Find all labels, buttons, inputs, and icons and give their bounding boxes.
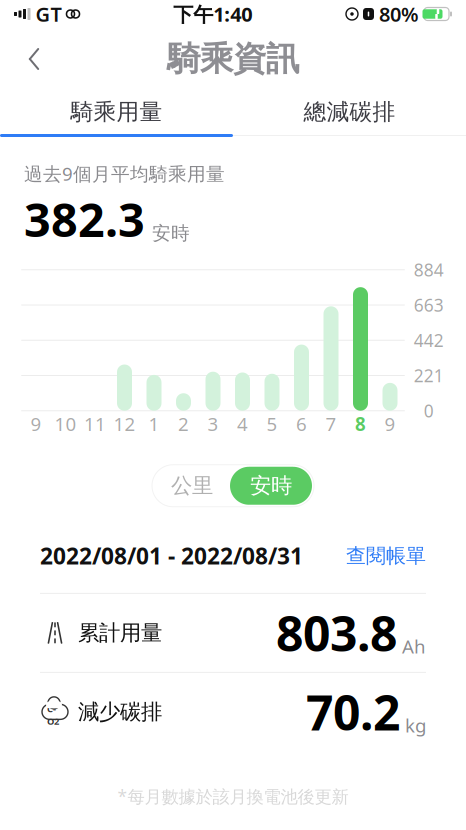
button[interactable]: 返回: [12, 37, 56, 81]
staticText: *每月數據於該月換電池後更新: [117, 785, 348, 808]
staticText: 80%: [379, 1, 419, 27]
staticText: 查閱帳單: [346, 543, 426, 568]
staticText: 累計用量: [78, 620, 162, 646]
staticText: 0: [424, 399, 434, 422]
staticText: 2: [178, 411, 189, 436]
staticText: 公里: [171, 473, 213, 499]
staticText: 8: [355, 411, 366, 436]
staticText: 11: [84, 411, 106, 436]
staticText: 12: [113, 411, 135, 436]
button[interactable]: 查閱帳單: [346, 543, 426, 568]
staticText: kg: [405, 713, 426, 738]
button[interactable]: 公里: [154, 467, 230, 505]
staticText: 減少碳排: [78, 699, 162, 725]
staticText: Ah: [402, 634, 426, 659]
button[interactable]: 騎乘用量: [0, 90, 233, 134]
staticText: 1: [148, 411, 159, 436]
staticText: 騎乘用量: [70, 98, 162, 126]
staticText: 382.3: [24, 188, 145, 250]
staticText: 騎乘資訊: [167, 38, 299, 79]
button[interactable]: 總減碳排: [233, 90, 466, 134]
staticText: 2022/08/01 - 2022/08/31: [40, 541, 303, 571]
staticText: GT: [35, 1, 61, 27]
staticText: 過去9個月平均騎乘用量: [24, 161, 225, 186]
staticText: 442: [414, 329, 444, 352]
button[interactable]: 安時: [230, 467, 312, 505]
staticText: 5: [266, 411, 277, 436]
staticText: 3: [207, 411, 218, 436]
staticText: 10: [54, 411, 76, 436]
staticText: 下午1:40: [173, 1, 252, 27]
staticText: 9: [384, 411, 395, 436]
staticText: 4: [237, 411, 248, 436]
staticText: 安時: [152, 222, 190, 245]
staticText: CO2: [47, 702, 59, 727]
staticText: 70.2: [306, 680, 400, 744]
staticText: 9: [30, 411, 41, 436]
staticText: 6: [296, 411, 307, 436]
staticText: 安時: [250, 473, 292, 499]
staticText: 總減碳排: [303, 98, 395, 126]
staticText: 884: [414, 258, 444, 281]
staticText: 7: [325, 411, 336, 436]
staticText: 803.8: [276, 601, 397, 665]
staticText: 221: [414, 364, 444, 387]
staticText: 663: [414, 293, 444, 316]
